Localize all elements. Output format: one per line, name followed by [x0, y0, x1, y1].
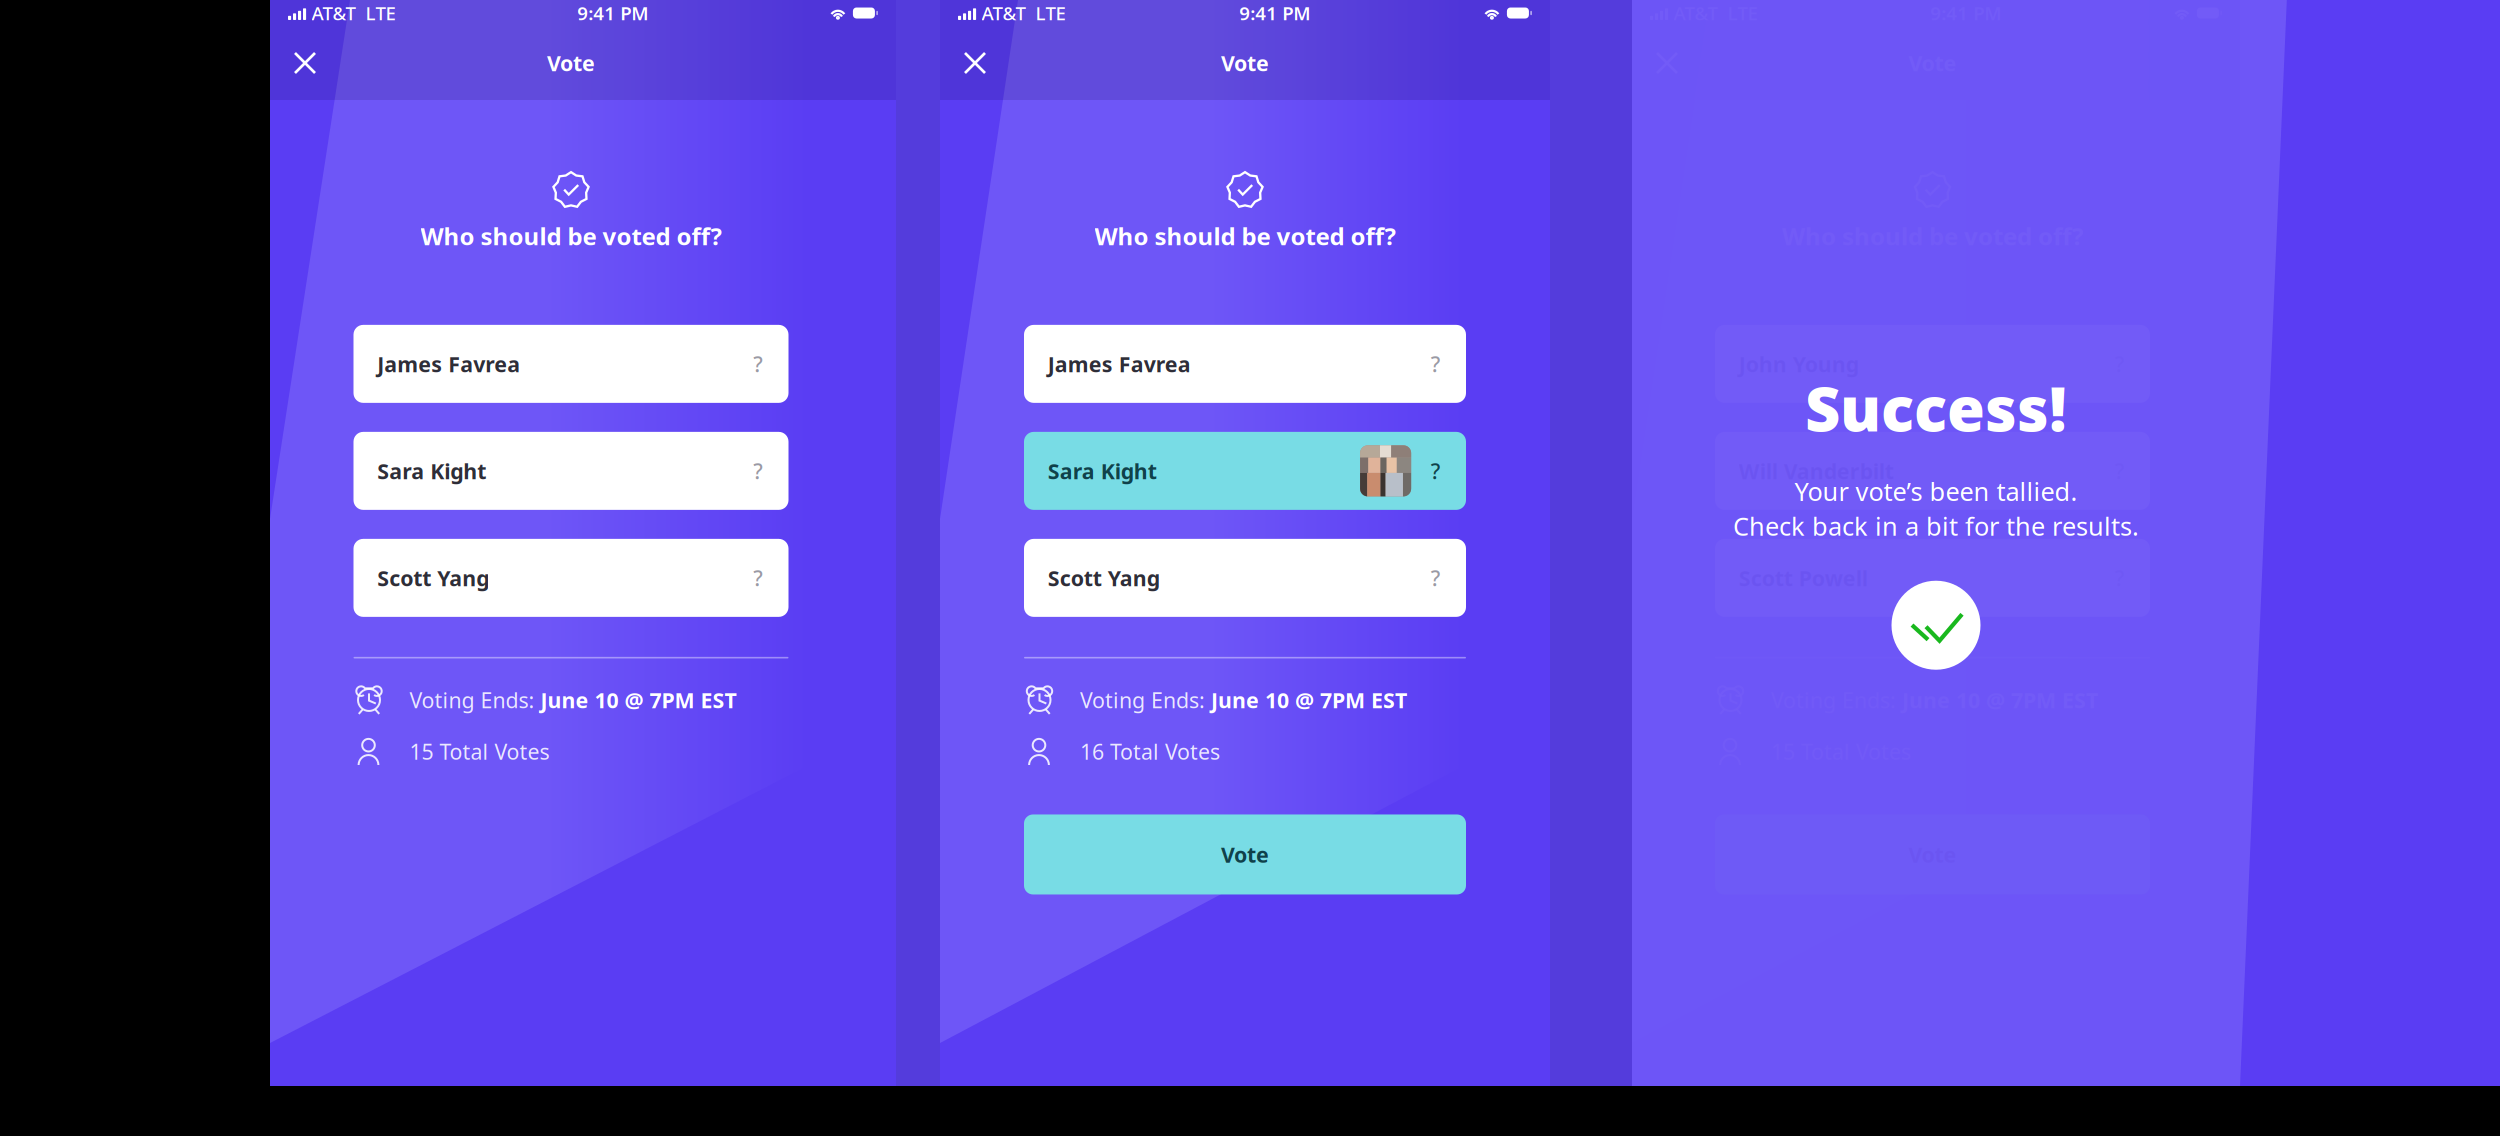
button[interactable]: Scott Yang: [353, 539, 788, 617]
button[interactable]: Scott Yang: [1024, 539, 1466, 617]
staticText: Scott Yang: [377, 564, 489, 592]
staticText: Sara Kight: [1048, 457, 1157, 485]
staticText: Who should be voted off?: [1094, 220, 1395, 252]
button[interactable]: Close: [956, 44, 994, 82]
staticText: ?: [753, 350, 763, 378]
staticText: Vote: [1221, 840, 1269, 869]
staticText: 9:41 PM: [577, 1, 648, 25]
button[interactable]: John Young: [1715, 325, 2150, 403]
staticText: Check back in a bit for the results.: [1733, 509, 2139, 543]
staticText: ?: [1431, 457, 1441, 485]
staticText: ?: [753, 457, 763, 485]
staticText: Will Vanderbilt: [1739, 457, 1894, 485]
staticText: June 10 @ 7PM EST: [540, 686, 736, 714]
staticText: Scott Yang: [1048, 564, 1160, 592]
staticText: ?: [1431, 350, 1441, 378]
staticText: 9:41 PM: [1239, 1, 1310, 25]
staticText: ?: [1431, 564, 1441, 592]
button[interactable]: Close: [286, 44, 324, 82]
staticText: June 10 @ 7PM EST: [1211, 686, 1407, 714]
staticText: ?: [753, 564, 763, 592]
staticText: Vote: [547, 49, 595, 77]
staticText: AT&T LTE: [312, 1, 396, 25]
staticText: Vote: [1221, 49, 1269, 77]
staticText: 16 Total Votes: [1080, 737, 1220, 766]
button[interactable]: James Favrea: [1024, 325, 1466, 403]
staticText: James Favrea: [377, 350, 520, 378]
staticText: Success!: [1805, 367, 2067, 448]
staticText: James Favrea: [1048, 350, 1191, 378]
staticText: Voting Ends:: [409, 686, 540, 714]
button[interactable]: Sara Kight: [353, 432, 788, 510]
button[interactable]: James Favrea: [353, 325, 788, 403]
staticText: Voting Ends:: [1080, 686, 1211, 714]
button[interactable]: Vote: [1024, 814, 1466, 894]
staticText: AT&T LTE: [982, 1, 1066, 25]
staticText: 15 Total Votes: [409, 737, 549, 766]
staticText: Sara Kight: [377, 457, 486, 485]
staticText: Your vote’s been tallied.: [1794, 474, 2077, 508]
button[interactable]: Sara Kight: [1024, 432, 1466, 510]
staticText: Who should be voted off?: [420, 220, 721, 252]
button[interactable]: Scott Powell: [1715, 539, 2150, 617]
button[interactable]: Will Vanderbilt: [1715, 432, 2150, 510]
